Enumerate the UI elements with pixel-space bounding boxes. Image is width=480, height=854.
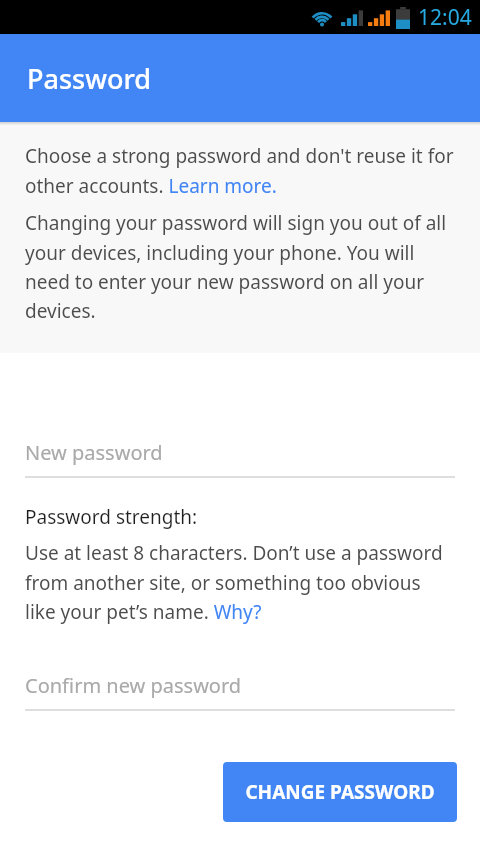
staticText: New password (25, 439, 163, 466)
staticText: Password (27, 60, 152, 97)
button[interactable]: Confirm new password (0, 672, 480, 711)
button[interactable]: New password (0, 439, 480, 478)
other: Battery level (396, 7, 410, 29)
staticText: Password strength: (25, 504, 198, 530)
staticText: Confirm new password (25, 672, 242, 699)
other: Wi-Fi signal (309, 8, 335, 28)
button[interactable]: CHANGE PASSWORD (223, 762, 457, 822)
button[interactable]: Choose a strong password and don't reuse… (25, 143, 455, 198)
other: Mobile signal SIM 2 (368, 8, 390, 28)
other: Mobile signal SIM 1 (341, 8, 363, 28)
button[interactable]: Use at least 8 characters. Don’t use a p… (25, 540, 455, 624)
staticText: Changing your password will sign you out… (25, 210, 455, 323)
staticText: 12:04 (418, 3, 472, 32)
staticText: CHANGE PASSWORD (245, 779, 435, 805)
